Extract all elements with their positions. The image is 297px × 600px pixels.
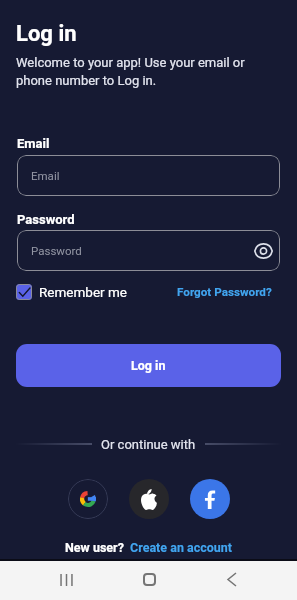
button[interactable]: Home — [129, 559, 169, 600]
button[interactable]: Back — [212, 559, 252, 600]
staticText: New user? — [65, 540, 124, 555]
button[interactable]: Continue with Google — [68, 479, 108, 519]
button[interactable]: Email — [17, 155, 280, 196]
button[interactable]: Continue with Facebook — [190, 479, 230, 519]
staticText: Log in — [16, 21, 77, 47]
button[interactable]: Remember me — [16, 284, 127, 300]
staticText: Remember me — [39, 284, 127, 300]
button[interactable]: Password — [17, 230, 280, 271]
button[interactable]: Create an account — [130, 540, 233, 555]
staticText: Password — [31, 244, 82, 257]
staticText: Email — [31, 169, 60, 182]
button[interactable]: Continue with Apple — [129, 479, 169, 519]
button[interactable]: Forgot Password? — [177, 285, 272, 299]
staticText: Forgot Password? — [177, 285, 272, 299]
button[interactable]: Log in — [16, 344, 281, 387]
staticText: Log in — [131, 358, 166, 373]
button[interactable]: Show password — [253, 241, 273, 261]
staticText: Create an account — [130, 540, 233, 555]
staticText: Email — [17, 136, 50, 151]
button[interactable]: Recent apps — [46, 559, 86, 600]
staticText: Welcome to your app! Use your email or p… — [16, 55, 282, 88]
staticText: Password — [17, 212, 75, 227]
staticText: Or continue with — [101, 437, 196, 452]
